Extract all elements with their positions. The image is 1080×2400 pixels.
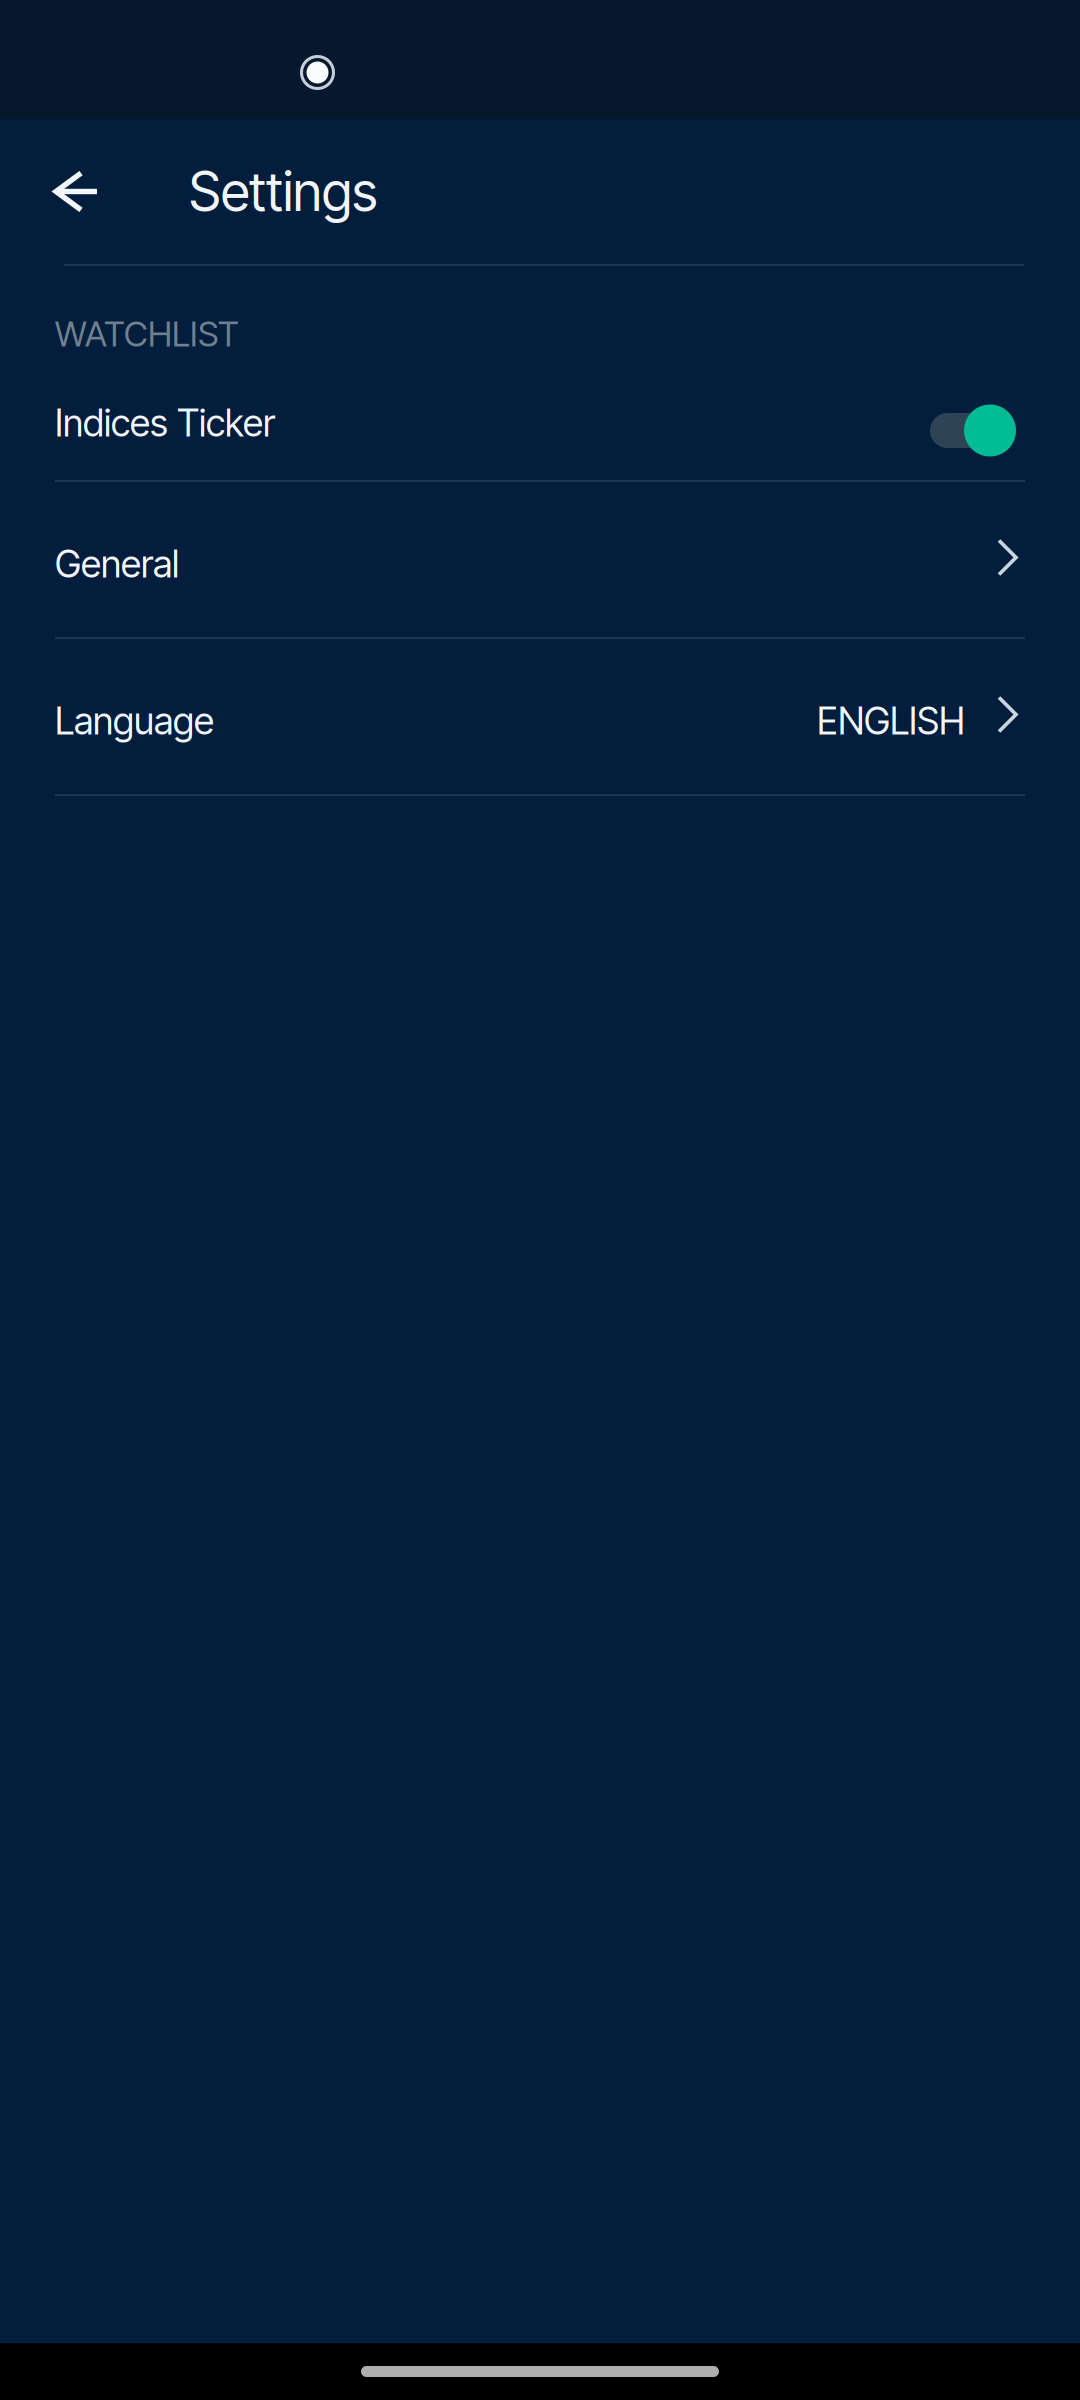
staticText: Settings: [189, 159, 377, 224]
button[interactable]: Back: [0, 119, 189, 264]
button[interactable]: Language: [0, 639, 1080, 794]
staticText: Indices Ticker: [55, 400, 275, 446]
button[interactable]: General: [0, 482, 1080, 637]
staticText: Language: [55, 698, 214, 744]
button[interactable]: Indices Ticker: [0, 357, 1080, 480]
staticText: General: [55, 541, 179, 587]
staticText: ENGLISH: [817, 698, 965, 744]
staticText: WATCHLIST: [55, 313, 239, 355]
